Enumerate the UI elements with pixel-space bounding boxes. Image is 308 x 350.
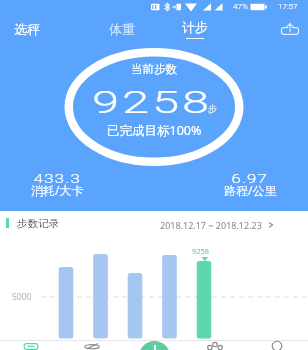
staticText: 17:57 — [278, 2, 298, 11]
staticText: 计步 — [182, 19, 208, 35]
button[interactable]: 体重 — [98, 14, 146, 44]
staticText: 6.97 — [231, 172, 269, 186]
staticText: 当前步数 — [131, 62, 177, 76]
button[interactable]: Start run — [139, 341, 170, 350]
staticText: 433.3 — [34, 172, 81, 186]
staticText: 步 — [208, 103, 217, 114]
staticText: 步数记录 — [17, 217, 59, 230]
staticText: 2018.12.17 ~ 2018.12.23 — [160, 219, 262, 231]
staticText: 消耗/大卡 — [31, 182, 84, 198]
staticText: 47% — [233, 2, 248, 11]
button[interactable]: Scale — [0, 341, 61, 350]
staticText: 5000 — [12, 291, 32, 303]
staticText: 9258 — [192, 246, 210, 256]
staticText: 路程/公里 — [224, 182, 277, 198]
button[interactable]: Friends — [184, 341, 246, 350]
button[interactable]: 计步 — [171, 14, 219, 44]
button[interactable]: 2018.12.17 ~ 2018.12.23 — [160, 219, 275, 231]
button[interactable]: 选秤 — [3, 14, 51, 44]
button[interactable]: Share — [272, 14, 308, 44]
staticText: 选秤 — [14, 21, 40, 37]
staticText: 9258 — [92, 84, 212, 120]
staticText: 体重 — [109, 21, 135, 37]
button[interactable]: Activity — [61, 341, 122, 350]
button[interactable]: Me — [246, 341, 308, 350]
staticText: 已完成目标100% — [107, 122, 202, 139]
